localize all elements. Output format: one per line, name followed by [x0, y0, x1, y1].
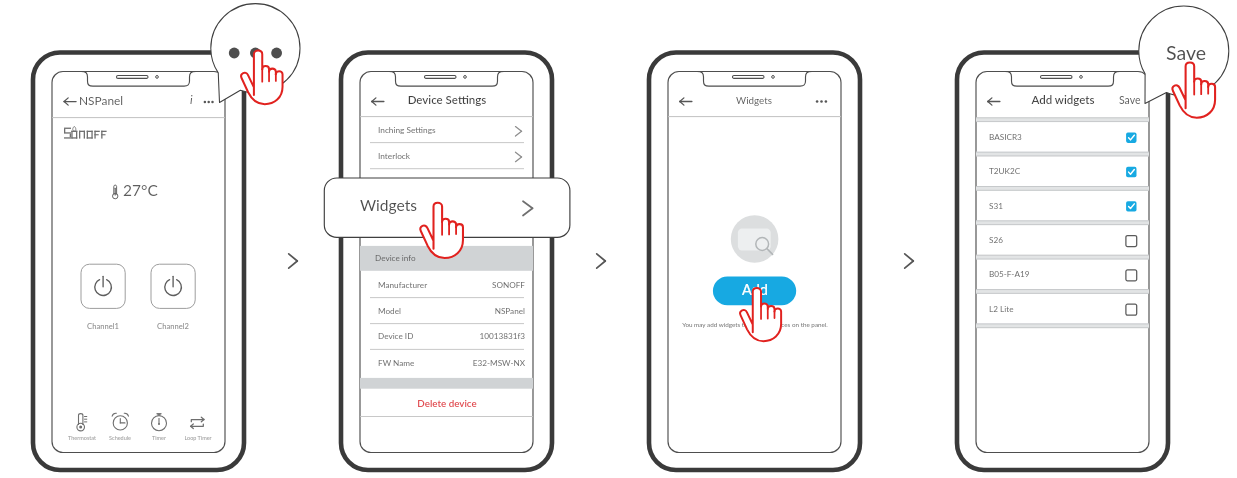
staticText: B05-F-A19 — [989, 269, 1030, 279]
button[interactable] — [360, 389, 533, 416]
button[interactable]: Back — [366, 92, 390, 112]
button[interactable] — [976, 157, 1149, 187]
button[interactable]: More options — [812, 92, 832, 112]
staticText: SONOFF — [205, 280, 525, 290]
staticText: You may add widgets to display devices o… — [595, 321, 915, 329]
staticText: Loop Timer — [38, 435, 358, 442]
staticText: S26 — [989, 235, 1003, 245]
staticText: Device ID — [378, 331, 414, 341]
staticText: Inching Settings — [378, 125, 436, 135]
staticText: S31 — [989, 201, 1003, 211]
staticText: Widgets — [360, 196, 418, 215]
staticText: i — [190, 93, 193, 107]
button[interactable] — [180, 410, 216, 444]
button[interactable] — [976, 260, 1149, 290]
staticText: Channel2 — [13, 321, 333, 330]
staticText: Thermostat — [0, 435, 242, 442]
staticText: L2 Lite — [989, 304, 1014, 314]
button[interactable] — [360, 143, 533, 169]
button[interactable]: Back — [674, 92, 698, 112]
staticText: NSPanel — [79, 93, 124, 107]
staticText: 10013831f3 — [205, 331, 525, 341]
staticText: Manufacturer — [378, 280, 428, 290]
button[interactable] — [64, 410, 100, 444]
staticText: E32-MSW-NX — [205, 358, 525, 368]
staticText: Timer — [0, 435, 319, 442]
button[interactable] — [712, 276, 796, 306]
staticText: Model — [378, 306, 401, 316]
staticText: NSPanel — [205, 306, 525, 316]
button[interactable] — [81, 264, 126, 326]
staticText: Schedule — [0, 435, 280, 442]
staticText: 27°C — [123, 181, 158, 200]
button[interactable] — [360, 120, 533, 143]
button[interactable] — [976, 192, 1149, 222]
button[interactable]: Device info — [180, 92, 194, 112]
staticText: Widgets — [594, 94, 914, 106]
button[interactable]: Back — [982, 92, 1006, 112]
staticText: Add — [595, 281, 915, 298]
button[interactable] — [976, 123, 1149, 153]
staticText: Device info — [375, 253, 416, 263]
staticText: FW Name — [378, 358, 415, 368]
staticText: T2UK2C — [989, 166, 1021, 176]
button[interactable] — [976, 226, 1149, 256]
staticText: Device Settings — [287, 93, 607, 107]
button[interactable] — [151, 264, 196, 326]
button[interactable] — [102, 410, 138, 444]
staticText: Save — [1026, 41, 1237, 64]
button[interactable] — [1114, 92, 1148, 112]
staticText: BASICR3 — [989, 132, 1022, 142]
button[interactable]: Back — [58, 92, 80, 112]
button[interactable] — [324, 178, 570, 238]
staticText: Channel1 — [0, 321, 263, 330]
staticText: Delete device — [287, 397, 607, 409]
button[interactable]: More options — [196, 92, 214, 112]
button[interactable] — [141, 410, 177, 444]
staticText: Add widgets — [903, 93, 1223, 107]
staticText: Interlock — [378, 151, 411, 161]
staticText: Save — [1119, 94, 1141, 107]
button[interactable] — [976, 295, 1149, 325]
